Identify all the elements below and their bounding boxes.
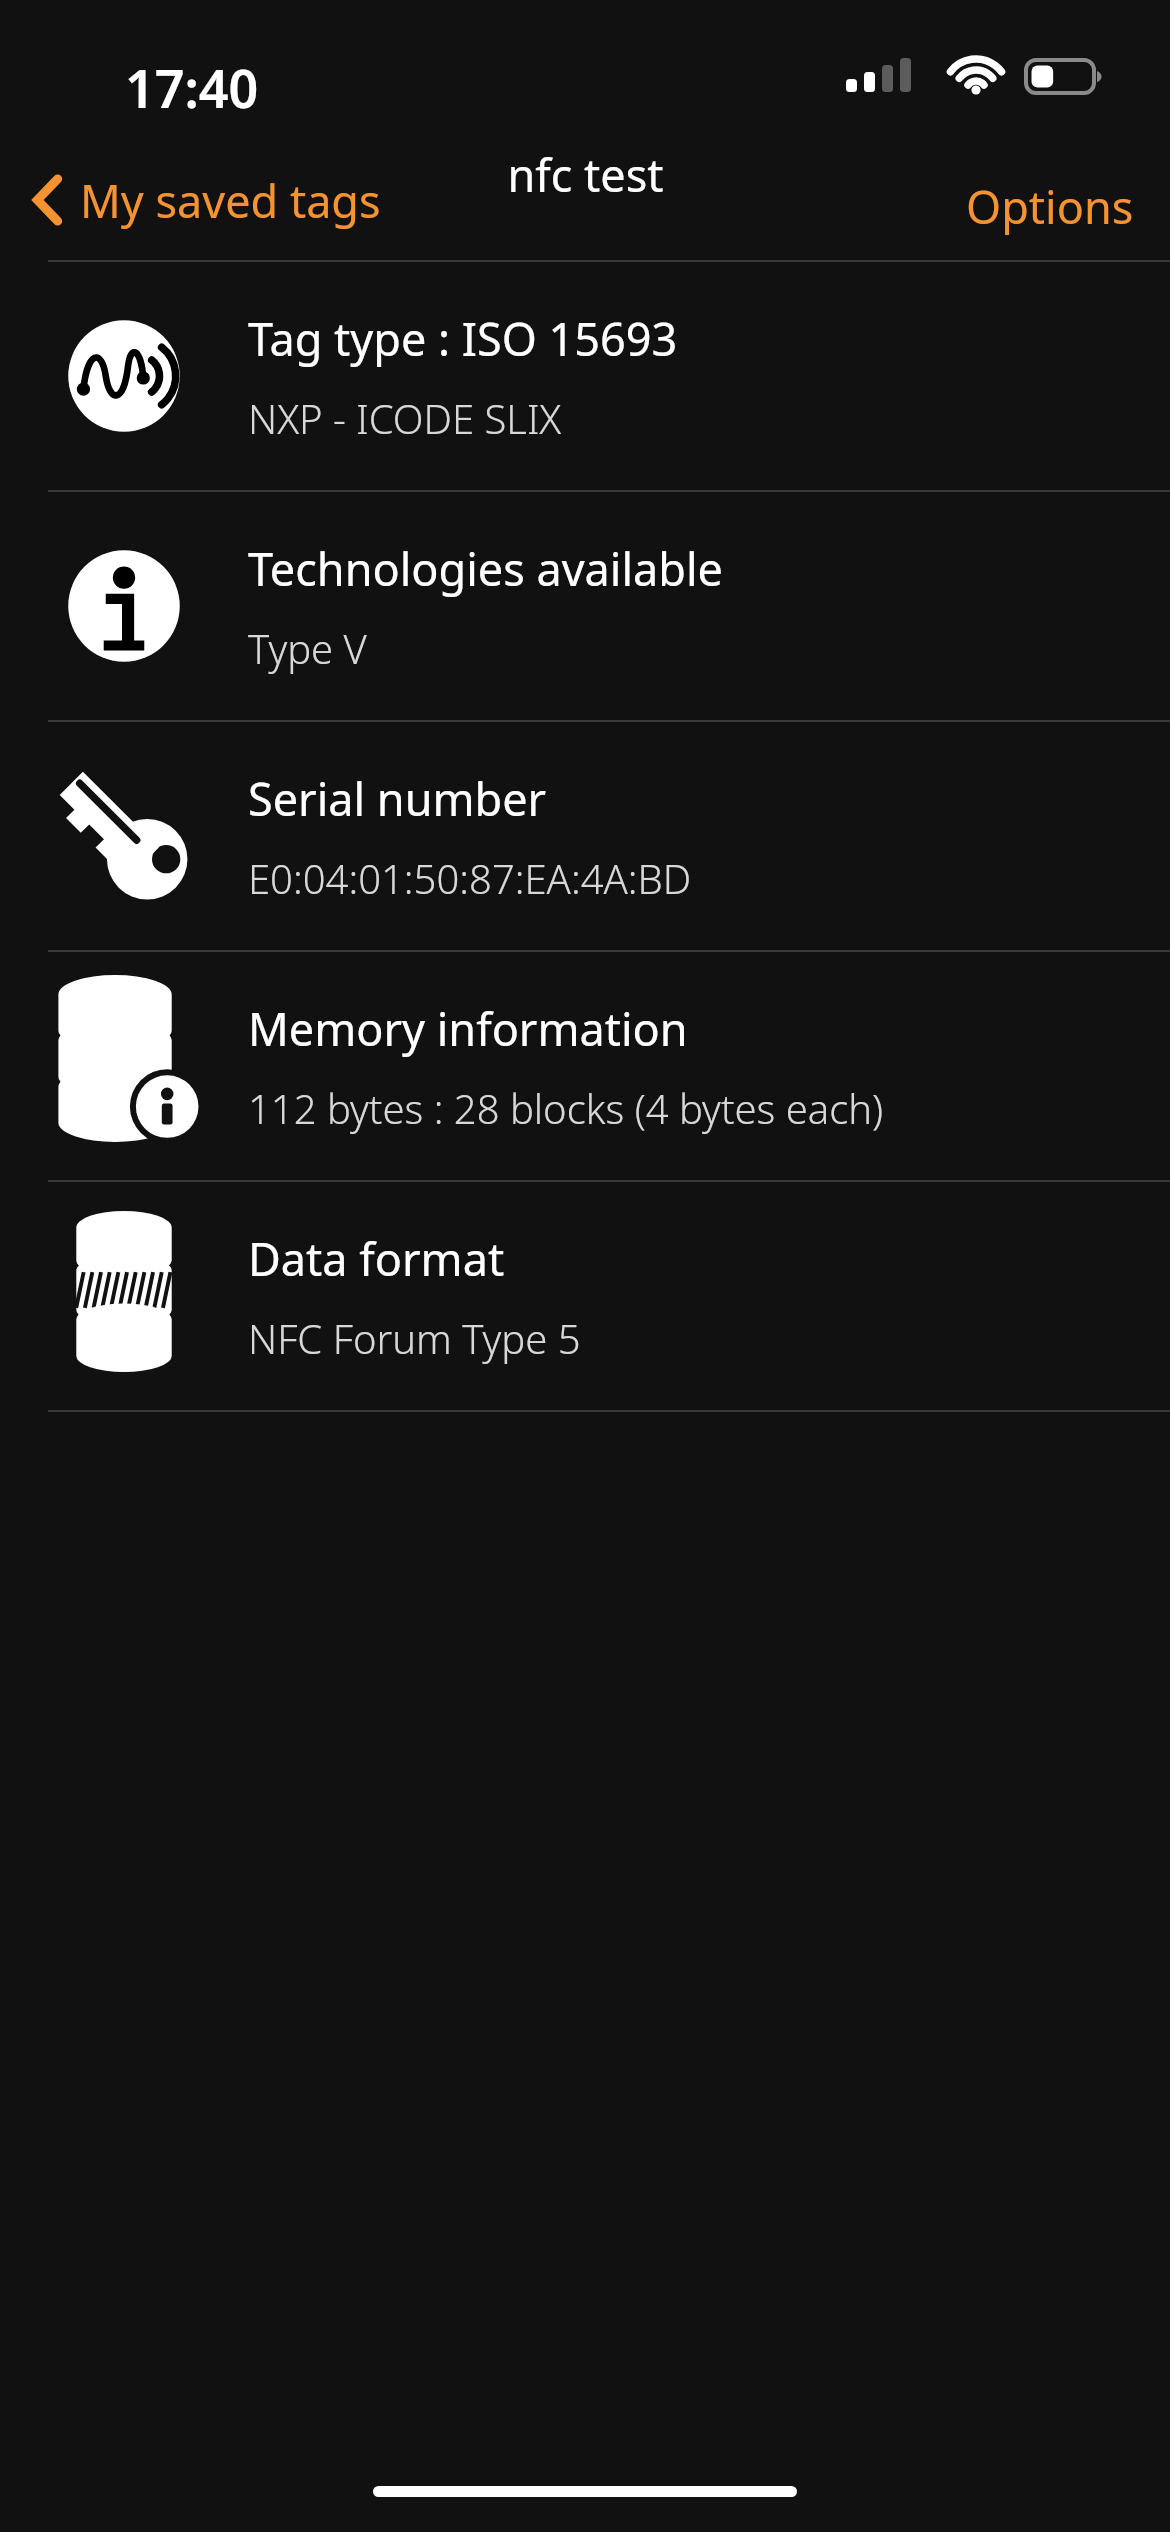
staticText: 17:40 (125, 52, 259, 123)
staticText: Tag type : ISO 15693 (248, 308, 678, 369)
staticText: Options (966, 176, 1134, 237)
other: Memory information (42, 984, 206, 1148)
staticText: Type V (248, 621, 367, 675)
staticText: nfc test (507, 144, 664, 205)
button[interactable]: NFC tag type (0, 262, 1170, 490)
staticText: Data format (248, 1228, 505, 1289)
staticText: Memory information (248, 998, 688, 1059)
other: Technologies available (42, 524, 206, 688)
staticText: Technologies available (248, 538, 723, 599)
staticText: Serial number (248, 768, 547, 829)
button[interactable]: Data format (0, 1182, 1170, 1410)
button[interactable]: Options (966, 176, 1134, 237)
button[interactable]: Memory information (0, 952, 1170, 1180)
other: NFC tag type (42, 294, 206, 458)
staticText: NFC Forum Type 5 (248, 1311, 581, 1365)
other: Serial number (42, 754, 206, 918)
other: Data format (42, 1214, 206, 1378)
button[interactable]: Serial number (0, 722, 1170, 950)
staticText: NXP - ICODE SLIX (248, 391, 562, 445)
staticText: E0:04:01:50:87:EA:4A:BD (248, 851, 692, 905)
staticText: My saved tags (80, 170, 381, 231)
button[interactable]: Technologies available (0, 492, 1170, 720)
staticText: 112 bytes : 28 blocks (4 bytes each) (248, 1081, 884, 1135)
button[interactable]: My saved tags (26, 168, 381, 232)
